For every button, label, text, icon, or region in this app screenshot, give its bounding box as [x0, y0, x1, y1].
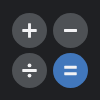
button[interactable]: Minus [53, 13, 88, 48]
button[interactable]: Plus [12, 13, 47, 48]
button[interactable]: Equals [53, 53, 88, 88]
button[interactable]: Divide [12, 53, 47, 88]
